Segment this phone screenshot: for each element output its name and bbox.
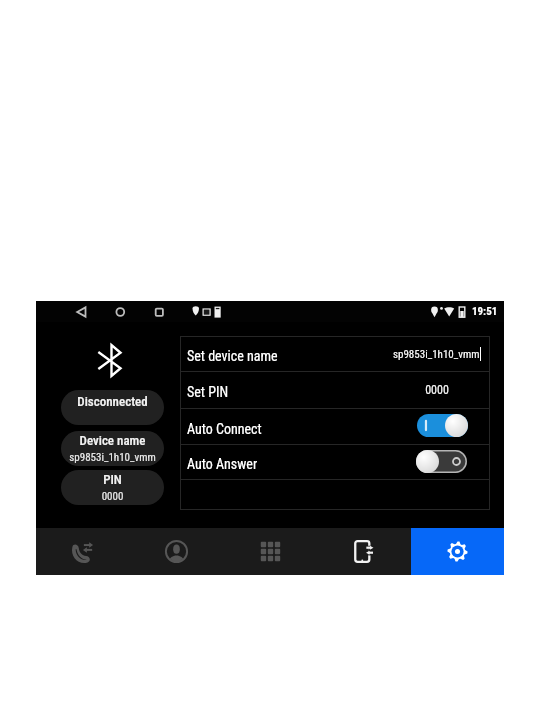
button[interactable]: Switch on	[417, 414, 468, 437]
button[interactable]: Set device name	[180, 337, 489, 371]
button[interactable]: Switch off	[416, 450, 467, 473]
staticText: 0000	[425, 383, 449, 397]
button[interactable]: Transfer	[317, 528, 411, 575]
staticText: 19:51	[472, 305, 498, 318]
button[interactable]: Dialpad	[223, 528, 317, 575]
button[interactable]: Set PIN	[180, 372, 489, 408]
button[interactable]: Disconnected	[61, 390, 164, 425]
staticText: PIN	[61, 472, 164, 487]
staticText: Disconnected	[61, 394, 164, 409]
staticText: Set device name	[187, 348, 278, 364]
button[interactable]: Device name	[61, 431, 164, 466]
button[interactable]: Recent calls	[36, 528, 129, 575]
staticText: Auto Answer	[187, 456, 258, 472]
staticText: Device name	[61, 433, 164, 448]
staticText: Set PIN	[187, 384, 229, 400]
staticText: Auto Connect	[187, 421, 262, 437]
button[interactable]: Contacts	[129, 528, 223, 575]
button[interactable]: Auto Answer	[180, 445, 489, 479]
staticText: sp9853i_1h10_vmm	[61, 451, 164, 464]
button[interactable]: Settings	[411, 528, 504, 575]
button[interactable]: PIN	[61, 470, 164, 505]
button[interactable]: Auto Connect	[180, 409, 489, 444]
staticText: 0000	[61, 490, 164, 503]
staticText: sp9853i_1h10_vmm	[393, 348, 480, 361]
